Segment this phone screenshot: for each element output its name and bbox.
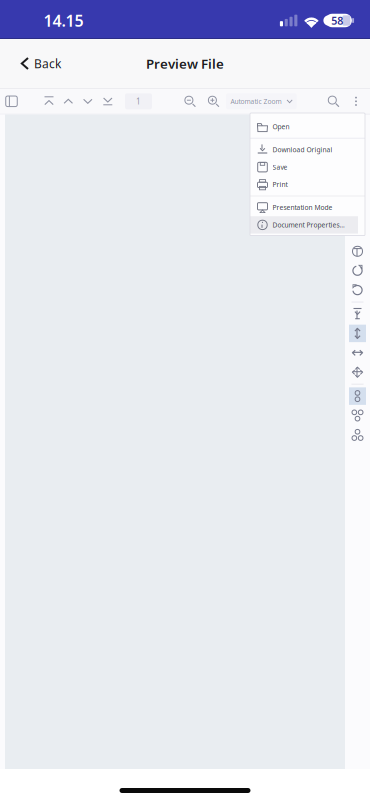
staticText: Presentation Mode (272, 203, 332, 212)
button[interactable]: Toggle Sidebar (1, 89, 21, 113)
button[interactable]: Previous Page (59, 89, 78, 113)
button[interactable]: Zoom Out (180, 89, 200, 113)
button[interactable]: Odd Spreads (345, 406, 370, 425)
button[interactable]: Page Fit (345, 304, 370, 324)
staticText: Preview File (146, 55, 224, 72)
button[interactable]: Next Page (78, 89, 97, 113)
button[interactable]: Rotate Clockwise (345, 261, 370, 280)
button[interactable]: Select Tool (345, 242, 370, 261)
button[interactable]: Print (250, 176, 365, 193)
button[interactable]: Even Spreads (345, 425, 370, 445)
staticText: 1 (136, 96, 141, 107)
button[interactable]: Horizontal Scrolling (345, 343, 370, 362)
button[interactable]: Automatic Zoom (226, 93, 297, 109)
button[interactable]: Vertical Scrolling (345, 324, 370, 343)
staticText: Download Original (272, 145, 332, 154)
button[interactable]: Wrapped Scrolling (345, 362, 370, 382)
button[interactable]: Presentation Mode (250, 199, 365, 216)
staticText: Print (272, 180, 287, 189)
staticText: Back (34, 55, 61, 71)
button[interactable]: Back (0, 45, 71, 81)
button[interactable]: Search (323, 89, 343, 113)
staticText: Automatic Zoom (230, 97, 281, 106)
button[interactable]: First Page (39, 89, 58, 113)
staticText: 58 (331, 13, 343, 28)
button[interactable]: No Spreads (345, 386, 370, 406)
button[interactable]: Download Original (250, 141, 365, 158)
button[interactable]: More Options (347, 89, 365, 113)
button[interactable]: Save (250, 158, 365, 176)
button[interactable]: Rotate Counterclockwise (345, 280, 370, 300)
staticText: Document Properties… (272, 220, 344, 229)
button[interactable]: Document Properties… (250, 216, 365, 234)
staticText: Open (272, 122, 289, 131)
staticText: Save (272, 163, 287, 172)
button[interactable]: Zoom In (203, 89, 223, 113)
staticText: 14.15 (43, 10, 83, 31)
button[interactable]: Last Page (98, 89, 117, 113)
button[interactable]: Open (250, 118, 365, 135)
